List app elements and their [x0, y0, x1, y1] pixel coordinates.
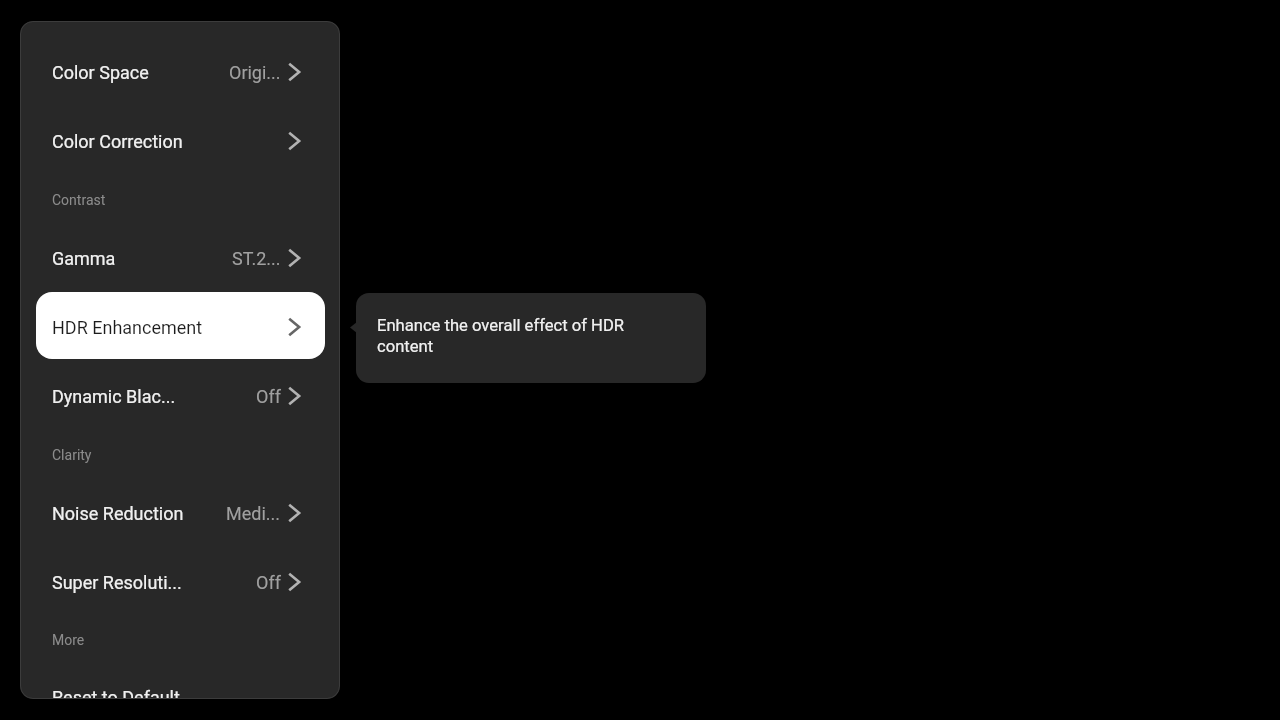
staticText: Medi...	[226, 503, 281, 524]
staticText: Off	[256, 386, 281, 407]
staticText: Reset to Default	[52, 687, 180, 699]
other: Open Color Space	[288, 63, 300, 81]
button[interactable]: Reset to Default	[36, 662, 325, 699]
staticText: ST.2...	[232, 248, 281, 269]
staticText: Off	[256, 572, 281, 593]
staticText: Enhance the overall effect of HDR conten…	[377, 316, 633, 356]
other: Open Noise Reduction	[288, 504, 300, 522]
staticText: Clarity	[52, 447, 92, 463]
button[interactable]: Gamma	[36, 223, 325, 290]
button[interactable]: Dynamic Blac...	[36, 361, 325, 428]
staticText: HDR Enhancement	[52, 317, 203, 338]
staticText: Noise Reduction	[52, 503, 184, 524]
other: Open HDR Enhancement	[288, 318, 300, 336]
staticText: Contrast	[52, 192, 106, 208]
button[interactable]: HDR Enhancement	[36, 292, 325, 359]
other: Open Dynamic Blac...	[288, 387, 300, 405]
staticText: Color Correction	[52, 131, 183, 152]
staticText: More	[52, 632, 85, 648]
other: Open Color Correction	[288, 132, 300, 150]
staticText: Super Resoluti...	[52, 572, 182, 593]
other: Open Gamma	[288, 249, 300, 267]
button[interactable]: Color Correction	[36, 106, 325, 173]
button[interactable]: Color Space	[36, 37, 325, 104]
staticText: Gamma	[52, 248, 116, 269]
staticText: Dynamic Blac...	[52, 386, 176, 407]
button[interactable]: Enhance the overall effect of HDR conten…	[356, 293, 706, 383]
staticText: Origi...	[229, 62, 281, 83]
button[interactable]: Noise Reduction	[36, 478, 325, 545]
other: Open Super Resoluti...	[288, 573, 300, 591]
button[interactable]: Super Resoluti...	[36, 547, 325, 614]
staticText: Color Space	[52, 62, 149, 83]
